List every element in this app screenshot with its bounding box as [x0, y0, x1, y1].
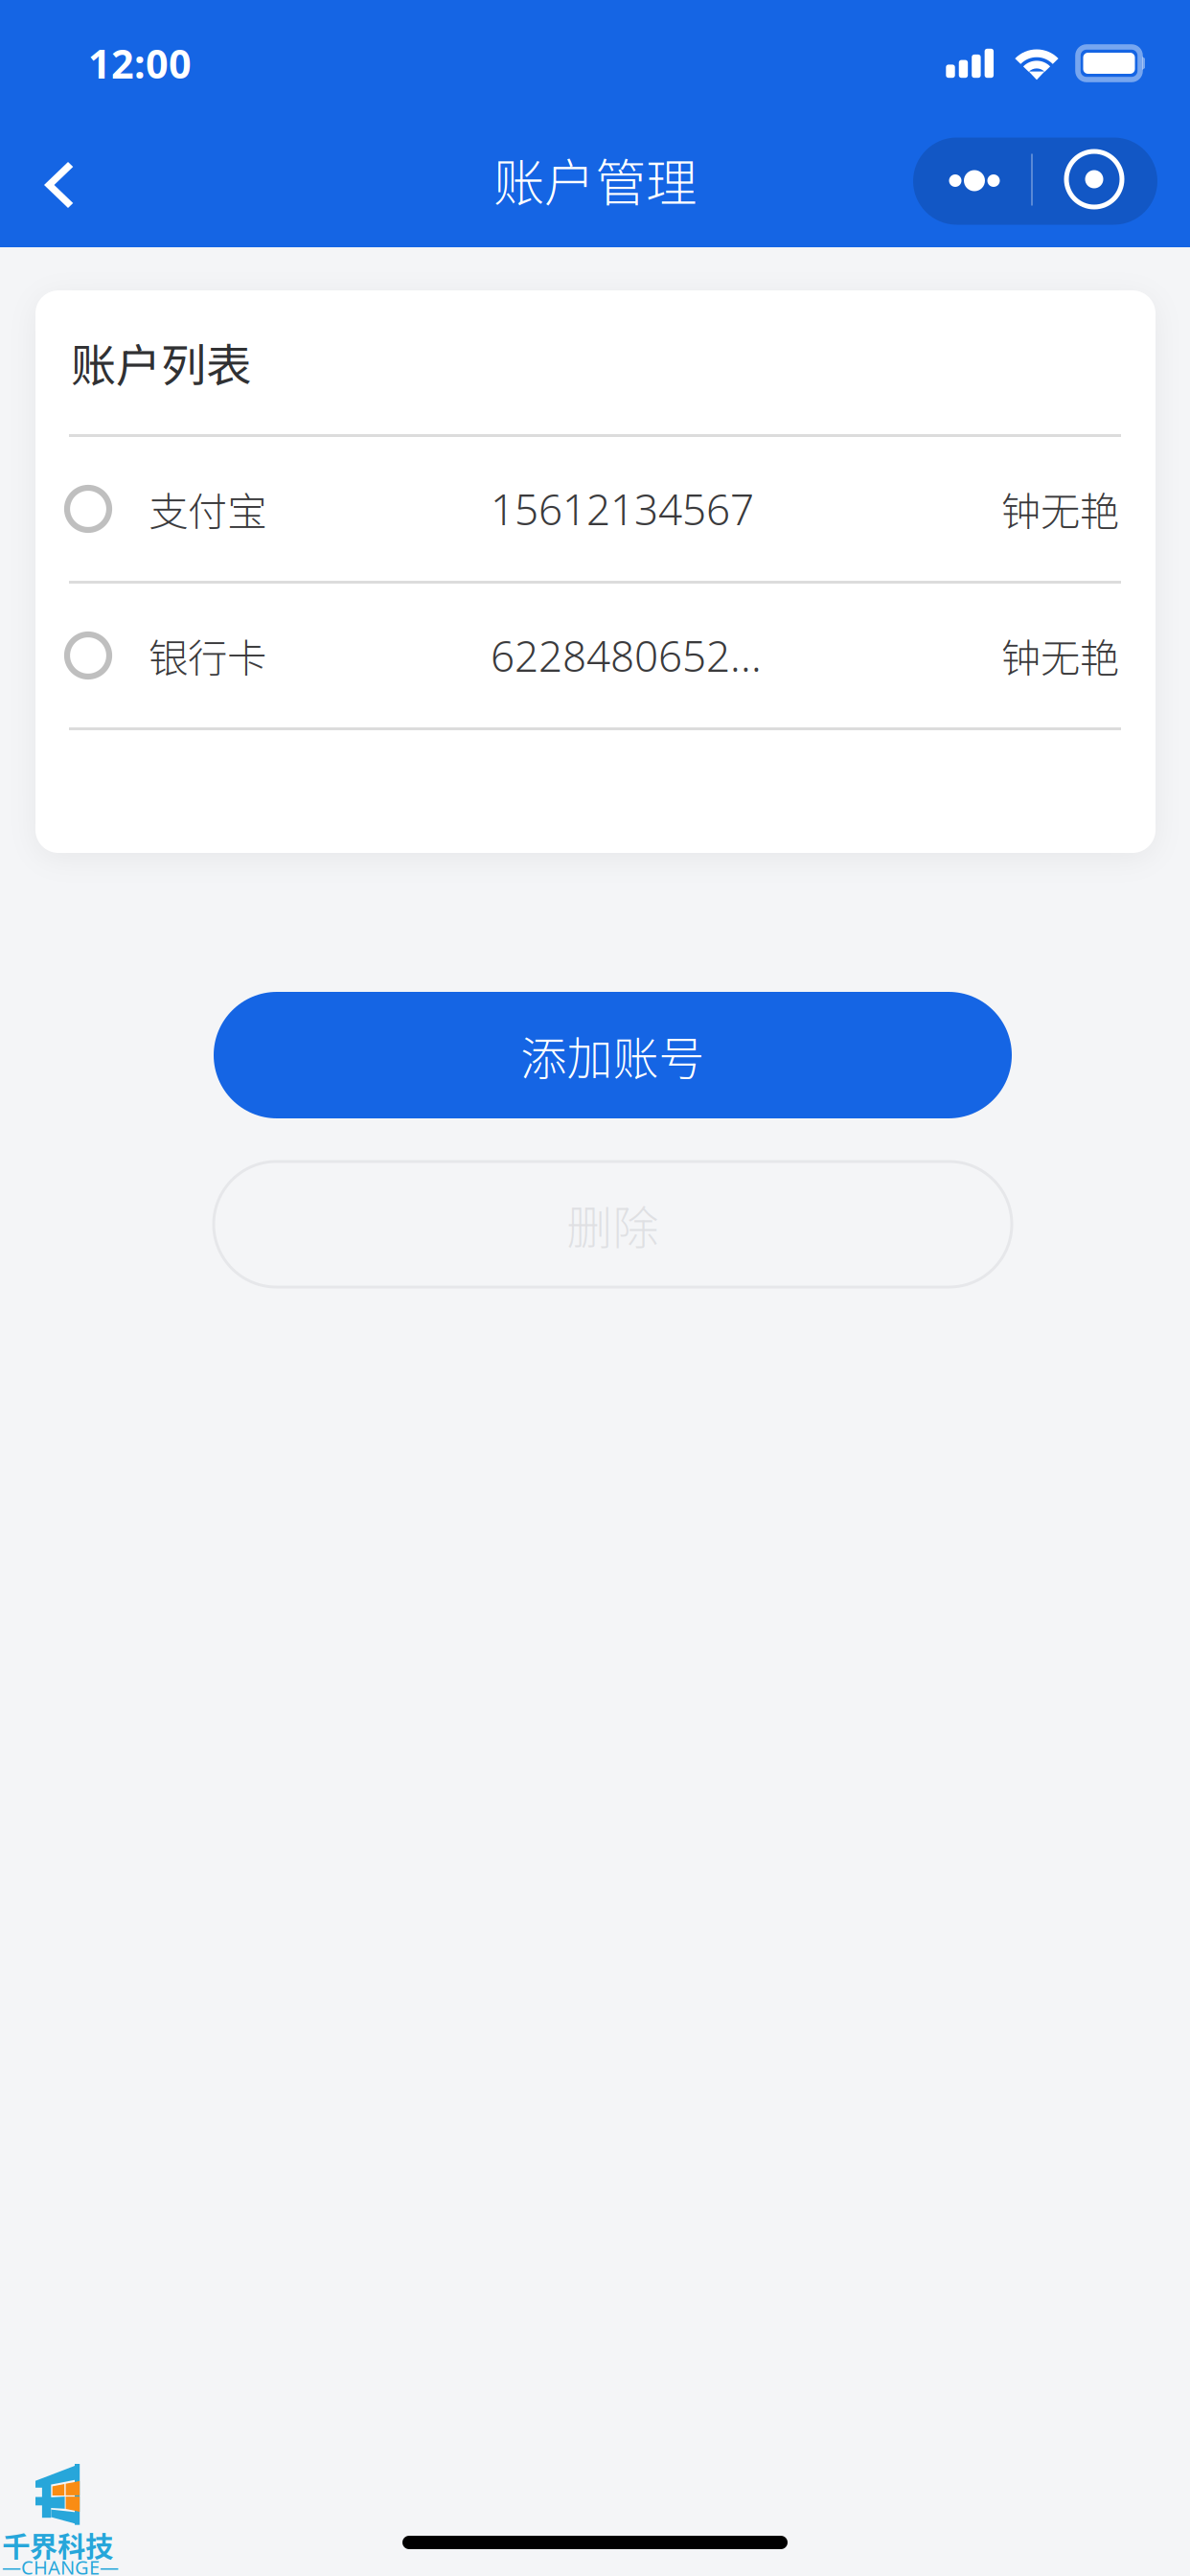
staticText: 支付宝 [149, 480, 266, 538]
staticText: 账户管理 [493, 142, 697, 216]
staticText: 删除 [567, 1191, 659, 1258]
staticText: 12:00 [88, 36, 192, 90]
button[interactable]: 银行卡 [35, 584, 1156, 727]
staticText: 添加账号 [521, 1022, 705, 1088]
button[interactable]: 添加账号 [214, 992, 1012, 1118]
button[interactable]: 返回 [7, 137, 110, 233]
staticText: 千界科技 [2, 2524, 113, 2565]
staticText: 6228480652... [491, 627, 762, 684]
button[interactable]: 支付宝 [35, 437, 1156, 581]
staticText: 钟无艳 [1001, 627, 1119, 684]
staticText: 15612134567 [491, 480, 754, 538]
staticText: 银行卡 [149, 627, 266, 684]
staticText: 账户列表 [71, 329, 251, 395]
staticText: 钟无艳 [1001, 480, 1119, 538]
button[interactable]: 更多 [913, 138, 1157, 225]
staticText: —CHANGE— [2, 2554, 119, 2576]
